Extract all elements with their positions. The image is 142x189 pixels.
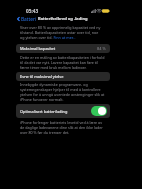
staticText: Optimalisert batterilading — [20, 109, 68, 114]
staticText: Evne til maksimal ytelse — [20, 74, 64, 79]
button[interactable]: Optimalisert batterilading, på — [91, 106, 107, 116]
button[interactable]: Maksimal kapasitet — [16, 44, 110, 53]
staticText: Dette er en måling av batterikapasiteten… — [20, 55, 106, 69]
staticText: 84 % — [97, 46, 106, 51]
staticText: Maksimal kapasitet — [20, 46, 56, 51]
button[interactable]: Optimalisert batterilading — [16, 104, 110, 118]
staticText: 05:43 — [26, 8, 39, 13]
staticText: iPhone forlenger batteriets levetid ved … — [20, 120, 106, 134]
staticText: Batteri — [21, 16, 37, 22]
button[interactable]: Evne til maksimal ytelse — [16, 72, 110, 81]
staticText: Innebygde dynamiske programvare- og syst… — [20, 82, 106, 101]
staticText: Viser over 80 % av opprinnelig kapasitet… — [20, 25, 101, 40]
staticText: Batterihelbred og -lading — [38, 16, 88, 22]
button[interactable]: Batteri — [16, 16, 39, 22]
